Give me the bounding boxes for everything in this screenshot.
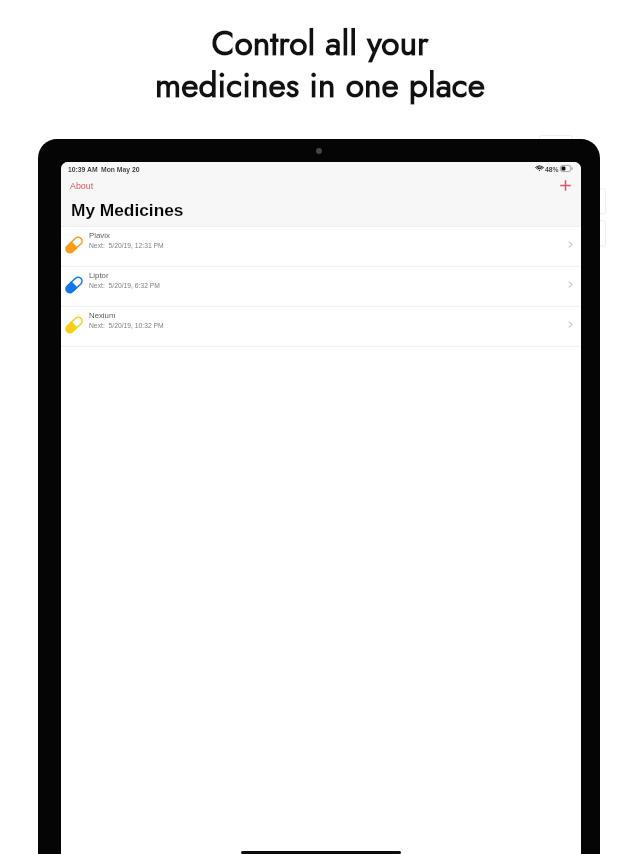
staticText: About xyxy=(70,181,94,191)
staticText: Plavix xyxy=(89,231,110,240)
button[interactable]: About xyxy=(68,179,96,193)
staticText: Mon May 20 xyxy=(101,166,140,174)
staticText: My Medicines xyxy=(71,200,184,219)
button[interactable]: Nexium xyxy=(61,307,581,346)
button[interactable]: Liptor xyxy=(61,267,581,306)
staticText: Next: 5/20/19, 12:31 PM xyxy=(89,242,164,250)
staticText: 48% xyxy=(545,166,559,174)
button[interactable]: Add medicine xyxy=(557,177,573,193)
button[interactable]: Plavix xyxy=(61,227,581,266)
staticText: 10:39 AM xyxy=(68,166,98,174)
staticText: Liptor xyxy=(89,271,109,280)
staticText: Next: 5/20/19, 10:32 PM xyxy=(89,322,164,330)
staticText: Control all your xyxy=(0,19,640,67)
staticText: Next: 5/20/19, 6:32 PM xyxy=(89,282,160,290)
staticText: medicines in one place xyxy=(0,61,640,109)
staticText: Nexium xyxy=(89,311,116,320)
